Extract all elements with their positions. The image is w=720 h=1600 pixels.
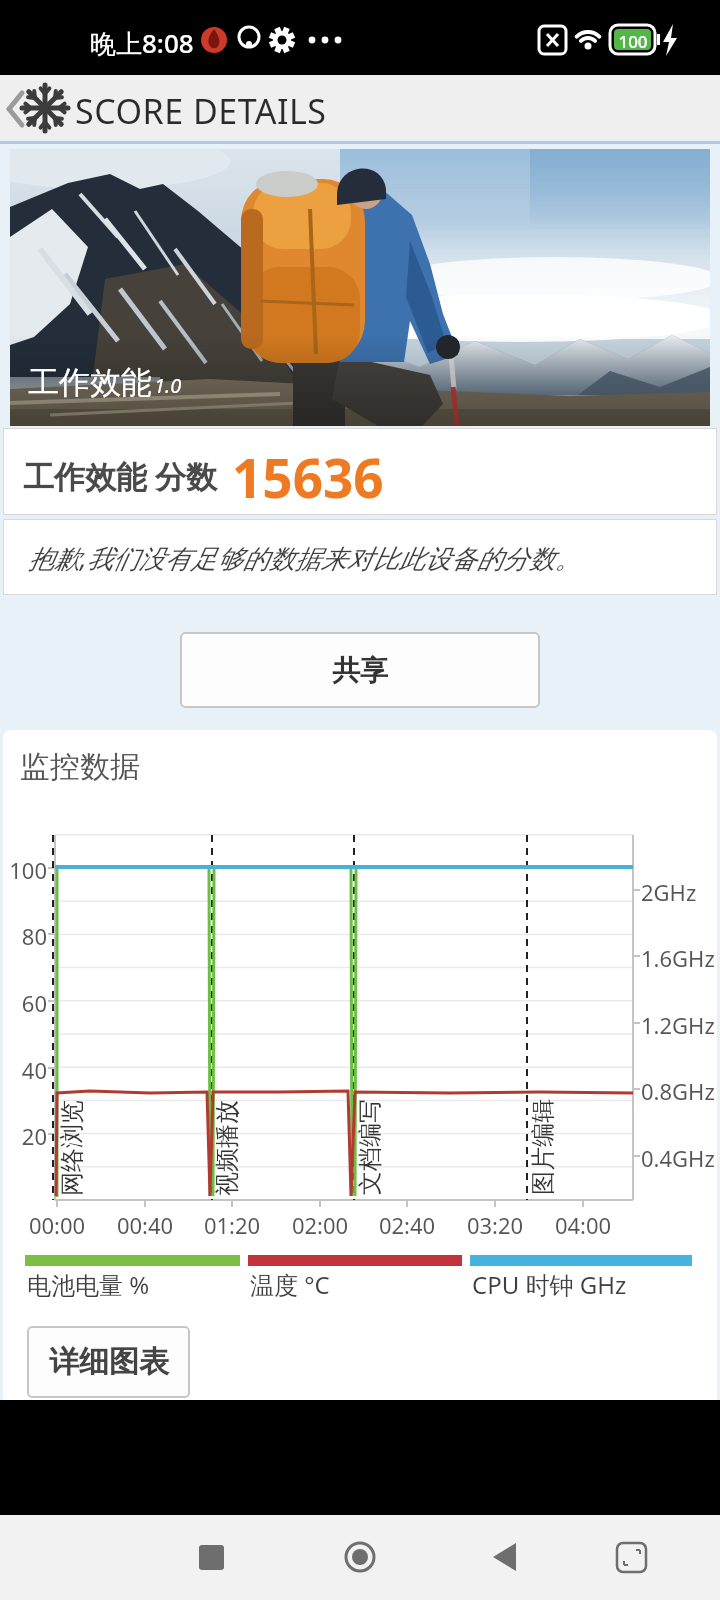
button[interactable] [0, 75, 720, 141]
staticText: 工作效能 [28, 363, 152, 402]
staticText: 0.8GHz [641, 1076, 715, 1106]
staticText: 01:20 [192, 1210, 272, 1240]
button[interactable] [333, 1530, 388, 1585]
staticText: 电池电量 % [27, 1268, 150, 1301]
staticText: 温度 °C [250, 1268, 330, 1301]
button[interactable] [478, 1530, 533, 1585]
staticText: 共享 [332, 653, 388, 688]
staticText: 视频播放 [212, 1088, 242, 1208]
staticText: 文档编写 [355, 1087, 385, 1207]
staticText: 00:40 [105, 1210, 185, 1240]
staticText: SCORE DETAILS [75, 88, 327, 134]
staticText: 监控数据 [20, 748, 140, 786]
staticText: 网络浏览 [57, 1088, 87, 1208]
staticText: 详细图表 [49, 1343, 169, 1381]
staticText: 晚上8:08 [90, 25, 194, 61]
staticText: 80 [5, 921, 47, 951]
staticText: 图片编辑 [528, 1087, 558, 1207]
staticText: 04:00 [543, 1210, 623, 1240]
button[interactable] [185, 1530, 240, 1585]
staticText: 60 [5, 988, 47, 1018]
button[interactable]: 共享 [180, 632, 540, 708]
staticText: 02:40 [367, 1210, 447, 1240]
staticText: 1.0 [154, 372, 182, 399]
staticText: 100 [5, 855, 47, 885]
staticText: 抱歉,我们没有足够的数据来对比此设备的分数。 [28, 540, 581, 576]
button[interactable]: 详细图表 [27, 1326, 190, 1398]
staticText: 0.4GHz [641, 1143, 715, 1173]
staticText: 40 [5, 1055, 47, 1085]
staticText: 03:20 [455, 1210, 535, 1240]
staticText: 02:00 [280, 1210, 360, 1240]
staticText: 1.6GHz [641, 943, 715, 973]
staticText: 工作效能 分数 [23, 455, 218, 497]
button[interactable] [605, 1530, 660, 1585]
staticText: 15636 [232, 441, 384, 513]
staticText: 100 [613, 30, 653, 53]
staticText: 2GHz [641, 877, 697, 907]
staticText: 1.2GHz [641, 1010, 715, 1040]
staticText: 00:00 [17, 1210, 97, 1240]
staticText: 20 [5, 1121, 47, 1151]
staticText: CPU 时钟 GHz [472, 1268, 627, 1301]
